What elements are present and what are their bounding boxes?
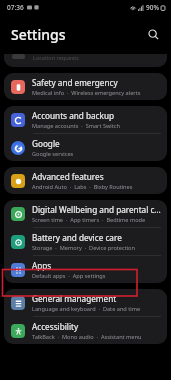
staticText: Screen time · App timers · Bedtime mode: [32, 216, 146, 224]
staticText: Android Auto · Labs · Bixby Routines: [32, 183, 133, 191]
button[interactable]: General management: [4, 289, 167, 316]
button[interactable]: Location requests: [4, 54, 167, 67]
staticText: Google: [32, 138, 60, 149]
staticText: Google services: [32, 150, 74, 158]
staticText: Language and keyboard · Date and time: [32, 305, 141, 313]
button[interactable]: Search: [143, 24, 163, 44]
button[interactable]: Apps: [4, 256, 167, 283]
staticText: Default apps · App settings: [32, 272, 106, 280]
staticText: 90%: [146, 3, 159, 12]
staticText: Storage · Memory · Device protection: [32, 244, 135, 252]
button[interactable]: Accounts and backup: [4, 106, 167, 133]
staticText: Settings: [11, 25, 66, 44]
button[interactable]: Battery and device care: [4, 228, 167, 255]
button[interactable]: Advanced features: [4, 167, 167, 194]
staticText: Accessibility: [32, 321, 79, 332]
staticText: 07:36: [7, 3, 24, 12]
staticText: TalkBack · Mono audio · Assistant menu: [32, 333, 142, 341]
button[interactable]: Safety and emergency: [4, 73, 167, 100]
staticText: General management: [32, 293, 117, 304]
button[interactable]: Digital Wellbeing and parental controls: [4, 200, 167, 227]
staticText: Advanced features: [32, 171, 104, 182]
staticText: Manage accounts · Smart Switch: [32, 122, 120, 130]
staticText: Location requests: [33, 54, 79, 61]
button[interactable]: Accessibility: [4, 317, 167, 344]
staticText: Medical info · Wireless emergency alerts: [32, 89, 141, 97]
button[interactable]: Google: [4, 134, 167, 161]
staticText: Accounts and backup: [32, 110, 115, 121]
staticText: Battery and device care: [32, 232, 122, 243]
staticText: Apps: [32, 260, 52, 271]
staticText: Safety and emergency: [32, 77, 118, 88]
staticText: Digital Wellbeing and parental controls: [32, 204, 161, 215]
